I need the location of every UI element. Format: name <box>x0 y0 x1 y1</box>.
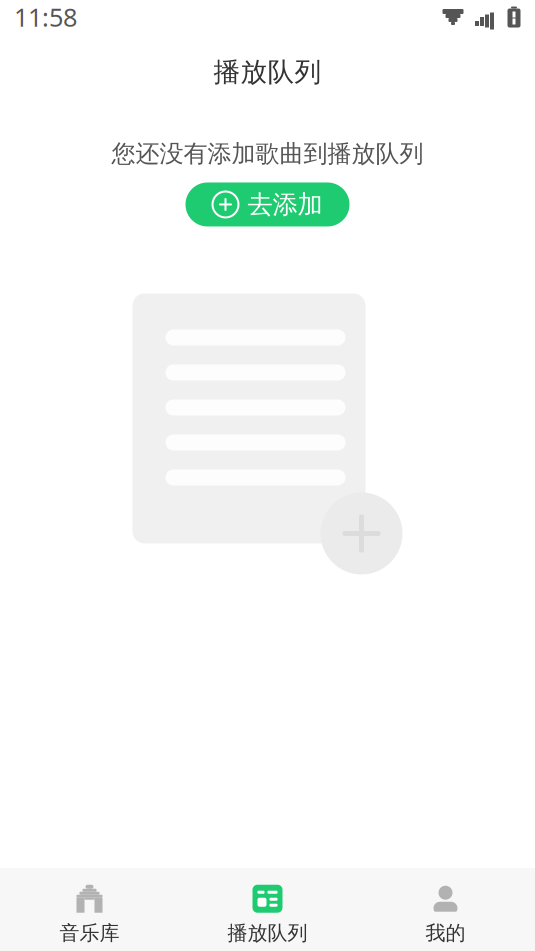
button[interactable]: 播放队列 <box>178 868 356 951</box>
staticText: 我的 <box>425 921 465 945</box>
button[interactable]: 去添加 <box>185 182 349 226</box>
staticText: 播放队列 <box>227 921 307 945</box>
button[interactable]: 音乐库 <box>0 868 178 951</box>
button[interactable]: 我的 <box>356 868 534 951</box>
staticText: 去添加 <box>247 189 322 220</box>
staticText: 播放队列 <box>213 56 321 88</box>
staticText: 您还没有添加歌曲到播放队列 <box>111 139 423 168</box>
staticText: 音乐库 <box>59 921 119 945</box>
staticText: 11:58 <box>14 0 77 34</box>
